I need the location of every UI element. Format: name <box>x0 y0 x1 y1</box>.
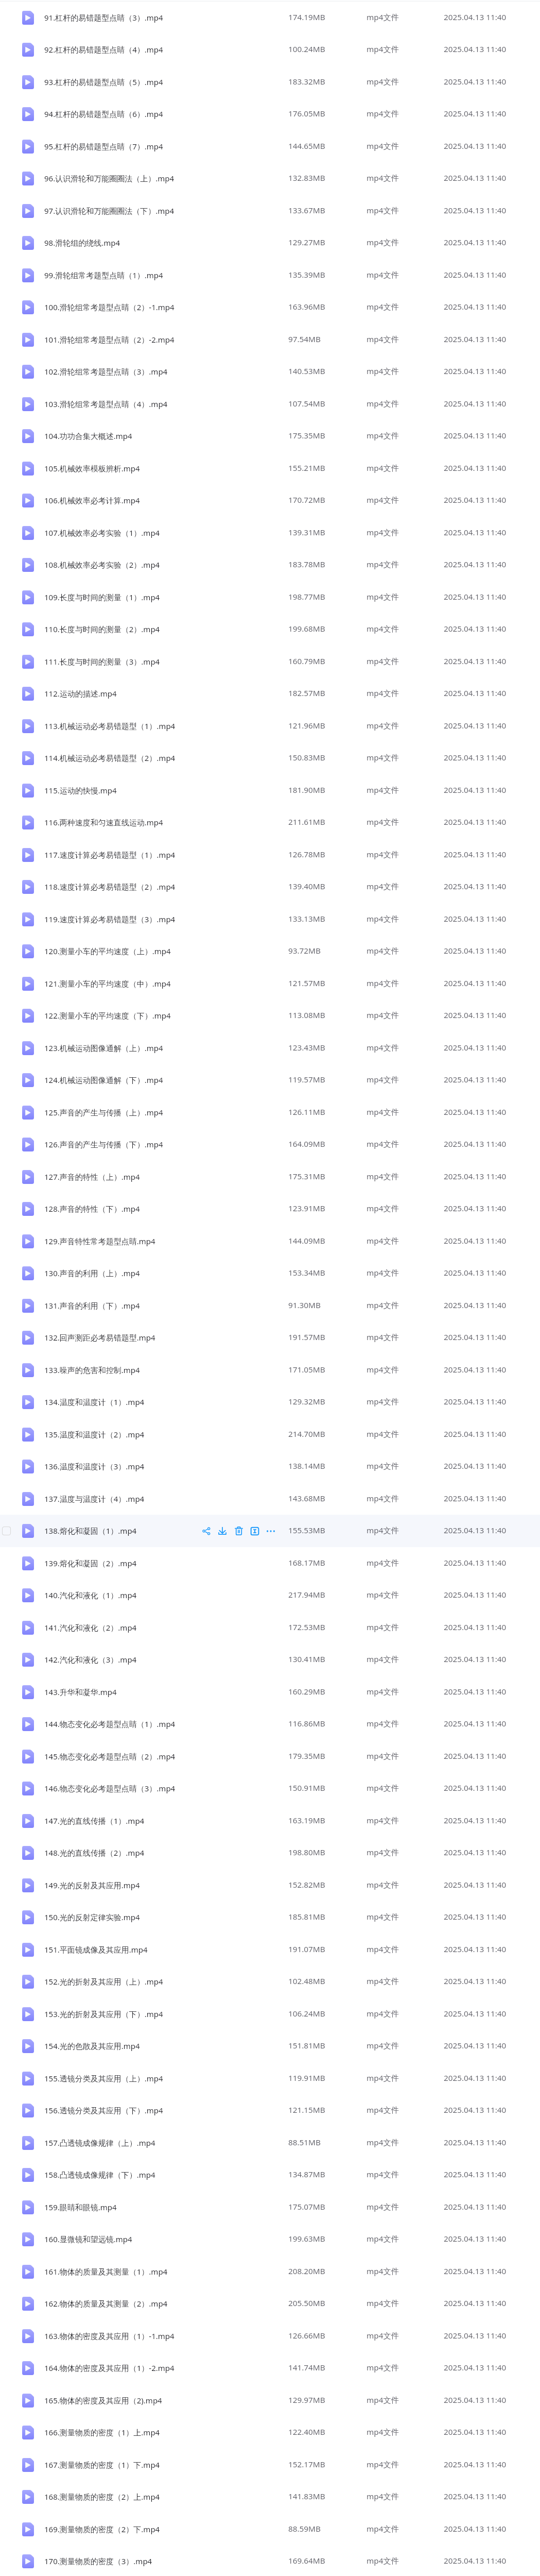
button[interactable]: 114.机械运动必考易错题型（2）.mp4 <box>0 742 540 774</box>
button[interactable]: 121.测量小车的平均速度（中）.mp4 <box>0 968 540 1000</box>
button[interactable]: Share <box>202 1527 211 1536</box>
button[interactable]: 164.物体的密度及其应用（1）-2.mp4 <box>0 2352 540 2384</box>
button[interactable]: 144.物态变化必考题型点睛（1）.mp4 <box>0 1708 540 1740</box>
button[interactable]: 135.温度和温度计（2）.mp4 <box>0 1418 540 1451</box>
button[interactable]: 130.声音的利用（上）.mp4 <box>0 1257 540 1290</box>
button[interactable]: 100.滑轮组常考题型点睛（2）-1.mp4 <box>0 291 540 324</box>
button[interactable]: 128.声音的特性（下）.mp4 <box>0 1193 540 1225</box>
button[interactable]: 154.光的色散及其应用.mp4 <box>0 2030 540 2062</box>
staticText: 130.41MB <box>288 1654 325 1665</box>
button[interactable]: 118.速度计算必考易错题型（2）.mp4 <box>0 871 540 903</box>
button[interactable]: 97.认识滑轮和万能圈圈法（下）.mp4 <box>0 195 540 227</box>
button[interactable]: 168.测量物质的密度（2）上.mp4 <box>0 2481 540 2513</box>
button[interactable]: 104.功功合集大概述.mp4 <box>0 420 540 452</box>
button[interactable]: 117.速度计算必考易错题型（1）.mp4 <box>0 839 540 871</box>
button[interactable]: 91.杠杆的易错题型点睛（3）.mp4 <box>0 2 540 34</box>
button[interactable]: 103.滑轮组常考题型点睛（4）.mp4 <box>0 388 540 420</box>
button[interactable]: 170.测量物质的密度（3）.mp4 <box>0 2545 540 2576</box>
button[interactable]: 99.滑轮组常考题型点睛（1）.mp4 <box>0 259 540 292</box>
button[interactable]: 107.机械效率必考实验（1）.mp4 <box>0 517 540 549</box>
button[interactable]: 106.机械效率必考计算.mp4 <box>0 484 540 517</box>
button[interactable]: 158.凸透镜成像规律（下）.mp4 <box>0 2159 540 2191</box>
button[interactable]: 134.温度和温度计（1）.mp4 <box>0 1386 540 1418</box>
button[interactable]: 132.回声测距必考易错题型.mp4 <box>0 1321 540 1354</box>
button[interactable]: 163.物体的密度及其应用（1）-1.mp4 <box>0 2320 540 2352</box>
button[interactable]: 140.汽化和液化（1）.mp4 <box>0 1579 540 1612</box>
button[interactable]: 149.光的反射及其应用.mp4 <box>0 1869 540 1902</box>
button[interactable]: 116.两种速度和匀速直线运动.mp4 <box>0 806 540 839</box>
button[interactable]: 124.机械运动图像通解（下）.mp4 <box>0 1064 540 1096</box>
button[interactable]: 101.滑轮组常考题型点睛（2）-2.mp4 <box>0 324 540 356</box>
staticText: 144.物态变化必考题型点睛（1）.mp4 <box>44 1719 176 1729</box>
button[interactable]: 150.光的反射定律实验.mp4 <box>0 1901 540 1934</box>
button[interactable]: 166.测量物质的密度（1）上.mp4 <box>0 2416 540 2449</box>
button[interactable]: 153.光的折射及其应用（下）.mp4 <box>0 1998 540 2030</box>
button[interactable]: 145.物态变化必考题型点睛（2）.mp4 <box>0 1740 540 1773</box>
button[interactable]: 138.熔化和凝固（1）.mp4 <box>0 1515 540 1547</box>
button[interactable]: 98.滑轮组的绕线.mp4 <box>0 227 540 259</box>
button[interactable]: 157.凸透镜成像规律（上）.mp4 <box>0 2127 540 2159</box>
button[interactable]: 93.杠杆的易错题型点睛（5）.mp4 <box>0 66 540 98</box>
button[interactable]: 161.物体的质量及其测量（1）.mp4 <box>0 2256 540 2288</box>
button[interactable]: 123.机械运动图像通解（上）.mp4 <box>0 1032 540 1064</box>
staticText: 99.滑轮组常考题型点睛（1）.mp4 <box>44 270 163 280</box>
button[interactable]: Download <box>218 1527 227 1536</box>
staticText: 2025.04.13 11:40 <box>444 1815 507 1826</box>
button[interactable]: 119.速度计算必考易错题型（3）.mp4 <box>0 903 540 936</box>
button[interactable]: 126.声音的产生与传播（下）.mp4 <box>0 1128 540 1161</box>
staticText: 126.11MB <box>288 1107 325 1117</box>
staticText: 137.温度与温度计（4）.mp4 <box>44 1494 145 1504</box>
button[interactable]: 162.物体的质量及其测量（2）.mp4 <box>0 2287 540 2320</box>
button[interactable]: 120.测量小车的平均速度（上）.mp4 <box>0 935 540 968</box>
button[interactable]: 108.机械效率必考实验（2）.mp4 <box>0 549 540 581</box>
button[interactable]: 112.运动的描述.mp4 <box>0 677 540 710</box>
staticText: 2025.04.13 11:40 <box>444 2137 507 2148</box>
staticText: mp4文件 <box>367 1042 399 1053</box>
button[interactable]: 113.机械运动必考易错题型（1）.mp4 <box>0 710 540 742</box>
button[interactable]: 151.平面镜成像及其应用.mp4 <box>0 1934 540 1966</box>
button[interactable]: 143.升华和凝华.mp4 <box>0 1676 540 1708</box>
button[interactable]: 122.测量小车的平均速度（下）.mp4 <box>0 999 540 1032</box>
staticText: mp4文件 <box>367 205 399 216</box>
button[interactable]: 142.汽化和液化（3）.mp4 <box>0 1643 540 1676</box>
button[interactable]: More <box>266 1527 275 1536</box>
button[interactable]: 125.声音的产生与传播（上）.mp4 <box>0 1096 540 1129</box>
button[interactable]: 169.测量物质的密度（2）下.mp4 <box>0 2513 540 2546</box>
button[interactable]: 92.杠杆的易错题型点睛（4）.mp4 <box>0 33 540 66</box>
staticText: 164.物体的密度及其应用（1）-2.mp4 <box>44 2363 175 2373</box>
staticText: 2025.04.13 11:40 <box>444 2427 507 2437</box>
button[interactable]: 136.温度和温度计（3）.mp4 <box>0 1450 540 1483</box>
button[interactable]: 139.熔化和凝固（2）.mp4 <box>0 1547 540 1580</box>
button[interactable]: 137.温度与温度计（4）.mp4 <box>0 1483 540 1515</box>
button[interactable]: 95.杠杆的易错题型点睛（7）.mp4 <box>0 130 540 163</box>
button[interactable]: 146.物态变化必考题型点睛（3）.mp4 <box>0 1772 540 1805</box>
button[interactable]: 94.杠杆的易错题型点睛（6）.mp4 <box>0 98 540 130</box>
button[interactable]: 133.噪声的危害和控制.mp4 <box>0 1354 540 1386</box>
staticText: mp4文件 <box>367 366 399 377</box>
button[interactable]: 111.长度与时间的测量（3）.mp4 <box>0 646 540 678</box>
button[interactable]: 127.声音的特性（上）.mp4 <box>0 1161 540 1193</box>
button[interactable]: 141.汽化和液化（2）.mp4 <box>0 1612 540 1644</box>
staticText: 136.温度和温度计（3）.mp4 <box>44 1461 145 1471</box>
button[interactable]: Rename <box>250 1527 259 1536</box>
staticText: mp4文件 <box>367 141 399 151</box>
button[interactable]: 167.测量物质的密度（1）下.mp4 <box>0 2449 540 2481</box>
button[interactable]: 156.透镜分类及其应用（下）.mp4 <box>0 2094 540 2127</box>
button[interactable]: 105.机械效率模板辨析.mp4 <box>0 452 540 485</box>
button[interactable]: 155.透镜分类及其应用（上）.mp4 <box>0 2062 540 2095</box>
button[interactable]: 129.声音特性常考题型点睛.mp4 <box>0 1225 540 1258</box>
button[interactable]: 148.光的直线传播（2）.mp4 <box>0 1837 540 1869</box>
button[interactable]: 159.眼睛和眼镜.mp4 <box>0 2191 540 2224</box>
button[interactable]: 102.滑轮组常考题型点睛（3）.mp4 <box>0 355 540 388</box>
button[interactable]: 152.光的折射及其应用（上）.mp4 <box>0 1965 540 1998</box>
button[interactable]: 147.光的直线传播（1）.mp4 <box>0 1805 540 1837</box>
button[interactable]: 96.认识滑轮和万能圈圈法（上）.mp4 <box>0 162 540 195</box>
button[interactable]: 131.声音的利用（下）.mp4 <box>0 1290 540 1322</box>
button[interactable]: 165.物体的密度及其应用（2).mp4 <box>0 2384 540 2417</box>
button[interactable]: 109.长度与时间的测量（1）.mp4 <box>0 581 540 614</box>
button[interactable]: 110.长度与时间的测量（2）.mp4 <box>0 613 540 646</box>
staticText: 2025.04.13 11:40 <box>444 495 507 505</box>
button[interactable]: 115.运动的快慢.mp4 <box>0 774 540 807</box>
button[interactable]: Delete <box>234 1527 243 1536</box>
button[interactable]: 160.显微镜和望远镜.mp4 <box>0 2223 540 2256</box>
